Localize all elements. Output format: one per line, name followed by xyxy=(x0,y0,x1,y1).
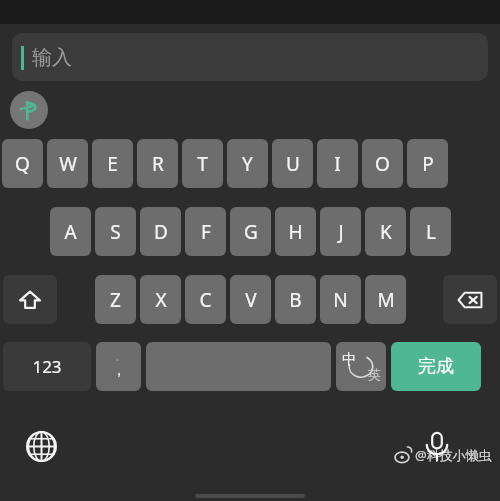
button[interactable]: 123 xyxy=(3,342,91,391)
button[interactable]: P xyxy=(407,139,448,188)
button[interactable]: Voice input xyxy=(414,423,460,469)
staticText: E xyxy=(107,151,118,177)
staticText: Z xyxy=(110,287,121,313)
button[interactable]: Z xyxy=(95,275,136,324)
staticText: 。 xyxy=(116,353,123,362)
staticText: N xyxy=(333,287,348,313)
staticText: C xyxy=(199,287,212,313)
button[interactable]: D xyxy=(140,207,181,256)
button[interactable]: Q xyxy=(2,139,43,188)
button[interactable]: I xyxy=(317,139,358,188)
button[interactable]: E xyxy=(92,139,133,188)
button[interactable]: Backspace xyxy=(443,275,497,324)
staticText: X xyxy=(155,287,167,313)
button[interactable]: V xyxy=(230,275,271,324)
button[interactable]: C xyxy=(185,275,226,324)
button[interactable]: A xyxy=(50,207,91,256)
button[interactable]: B xyxy=(275,275,316,324)
staticText: G xyxy=(244,219,258,245)
staticText: J xyxy=(338,219,344,245)
staticText: B xyxy=(289,287,302,313)
button[interactable]: U xyxy=(272,139,313,188)
button[interactable]: G xyxy=(230,207,271,256)
button[interactable]: Input method logo xyxy=(10,91,48,129)
button[interactable]: Space xyxy=(146,342,331,391)
button[interactable]: Switch Chinese English xyxy=(336,342,386,391)
staticText: T xyxy=(197,151,208,177)
button[interactable]: J xyxy=(320,207,361,256)
staticText: P xyxy=(422,151,434,177)
button[interactable]: N xyxy=(320,275,361,324)
staticText: Q xyxy=(15,151,30,177)
staticText: S xyxy=(110,219,121,245)
button[interactable]: Y xyxy=(227,139,268,188)
button[interactable]: L xyxy=(410,207,451,256)
staticText: 输入 xyxy=(32,45,72,70)
staticText: Y xyxy=(242,151,253,177)
staticText: U xyxy=(286,151,300,177)
button[interactable]: Change language xyxy=(18,423,64,469)
button[interactable]: R xyxy=(137,139,178,188)
button[interactable]: S xyxy=(95,207,136,256)
button[interactable]: M xyxy=(365,275,406,324)
button[interactable]: W xyxy=(47,139,88,188)
button[interactable]: O xyxy=(362,139,403,188)
staticText: D xyxy=(154,219,168,245)
button[interactable]: H xyxy=(275,207,316,256)
button[interactable]: X xyxy=(140,275,181,324)
staticText: 123 xyxy=(32,355,62,378)
staticText: F xyxy=(201,219,211,245)
button[interactable]: Comma xyxy=(96,342,141,391)
staticText: H xyxy=(288,219,303,245)
button[interactable]: Shift xyxy=(3,275,57,324)
button[interactable]: T xyxy=(182,139,223,188)
staticText: @科技小懒虫 xyxy=(415,446,492,464)
staticText: I xyxy=(334,151,341,177)
staticText: M xyxy=(377,287,395,313)
staticText: 英 xyxy=(368,366,381,382)
staticText: 中 xyxy=(342,351,356,369)
staticText: W xyxy=(59,151,77,177)
staticText: L xyxy=(426,219,436,245)
staticText: A xyxy=(64,219,77,245)
button[interactable]: F xyxy=(185,207,226,256)
staticText: O xyxy=(375,151,390,177)
staticText: R xyxy=(152,151,164,177)
staticText: V xyxy=(245,287,257,313)
button[interactable]: 完成 xyxy=(391,342,481,391)
staticText: K xyxy=(380,219,392,245)
button[interactable]: K xyxy=(365,207,406,256)
staticText: ， xyxy=(112,362,126,380)
button[interactable]: 输入 xyxy=(12,33,488,81)
staticText: 完成 xyxy=(418,355,454,378)
